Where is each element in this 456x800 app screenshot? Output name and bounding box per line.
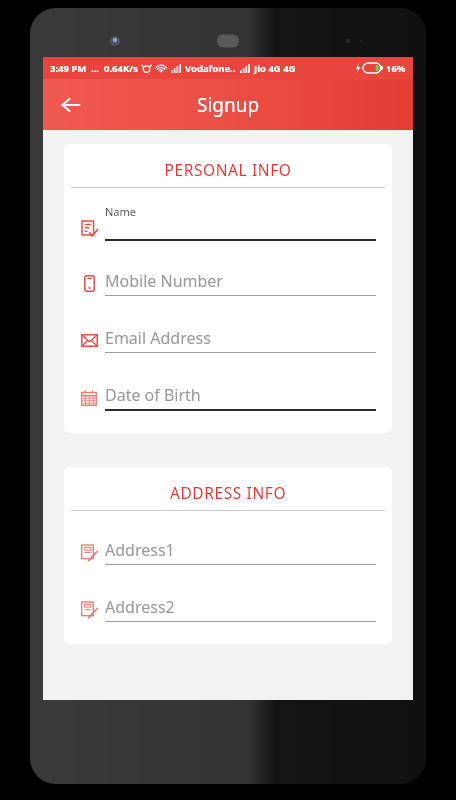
button[interactable]: Mobile Number	[78, 270, 376, 296]
staticText: ADDRESS INFO	[64, 482, 392, 503]
staticText: ...	[91, 62, 100, 75]
staticText: PERSONAL INFO	[64, 159, 392, 180]
staticText: Signup	[197, 92, 260, 118]
staticText: Vodafone..	[185, 62, 236, 75]
staticText: Address1	[105, 539, 175, 561]
staticText: Mobile Number	[105, 270, 223, 292]
staticText: Name	[105, 204, 137, 219]
button[interactable]: Date of Birth	[78, 384, 376, 411]
staticText: Email Address	[105, 327, 211, 349]
staticText: 16%	[386, 62, 406, 75]
button[interactable]: Email Address	[78, 327, 376, 353]
staticText: 3:49 PM	[50, 62, 87, 75]
staticText: Jio 4G 4G	[254, 62, 296, 75]
button[interactable]: Back	[49, 83, 93, 127]
staticText: Date of Birth	[105, 384, 201, 406]
staticText: 0.64K/s	[104, 62, 138, 75]
staticText: Address2	[105, 596, 175, 618]
button[interactable]: Name	[78, 204, 376, 241]
button[interactable]: Address2	[78, 596, 376, 622]
button[interactable]: Address1	[78, 539, 376, 565]
